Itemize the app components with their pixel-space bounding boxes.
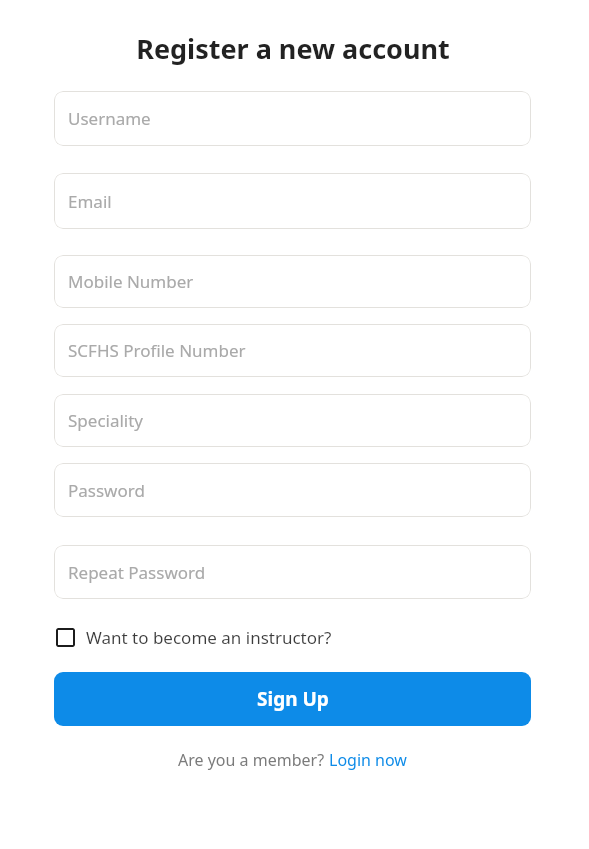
button[interactable]: Login now bbox=[329, 749, 407, 771]
button[interactable]: Repeat Password bbox=[54, 545, 531, 599]
button[interactable]: SCFHS Profile Number bbox=[54, 324, 531, 377]
button[interactable]: Sign Up bbox=[54, 672, 531, 726]
staticText: Email bbox=[68, 190, 112, 213]
button[interactable]: Speciality bbox=[54, 394, 531, 447]
staticText: Username bbox=[68, 107, 151, 130]
staticText: Are you a member? bbox=[178, 749, 329, 771]
button[interactable]: Want to become an instructor checkbox bbox=[54, 622, 334, 653]
button[interactable]: Email bbox=[54, 173, 531, 229]
staticText: Register a new account bbox=[136, 30, 450, 67]
staticText: Want to become an instructor? bbox=[86, 626, 332, 649]
staticText: SCFHS Profile Number bbox=[68, 339, 246, 362]
button[interactable]: Username bbox=[54, 91, 531, 146]
button[interactable]: Mobile Number bbox=[54, 255, 531, 308]
staticText: Speciality bbox=[68, 409, 144, 432]
other: Want to become an instructor checkbox bbox=[56, 628, 75, 647]
button[interactable]: Password bbox=[54, 463, 531, 517]
staticText: Password bbox=[68, 479, 145, 502]
staticText: Mobile Number bbox=[68, 270, 194, 293]
staticText: Login now bbox=[329, 749, 407, 771]
staticText: Repeat Password bbox=[68, 561, 206, 584]
staticText: Sign Up bbox=[257, 686, 329, 712]
